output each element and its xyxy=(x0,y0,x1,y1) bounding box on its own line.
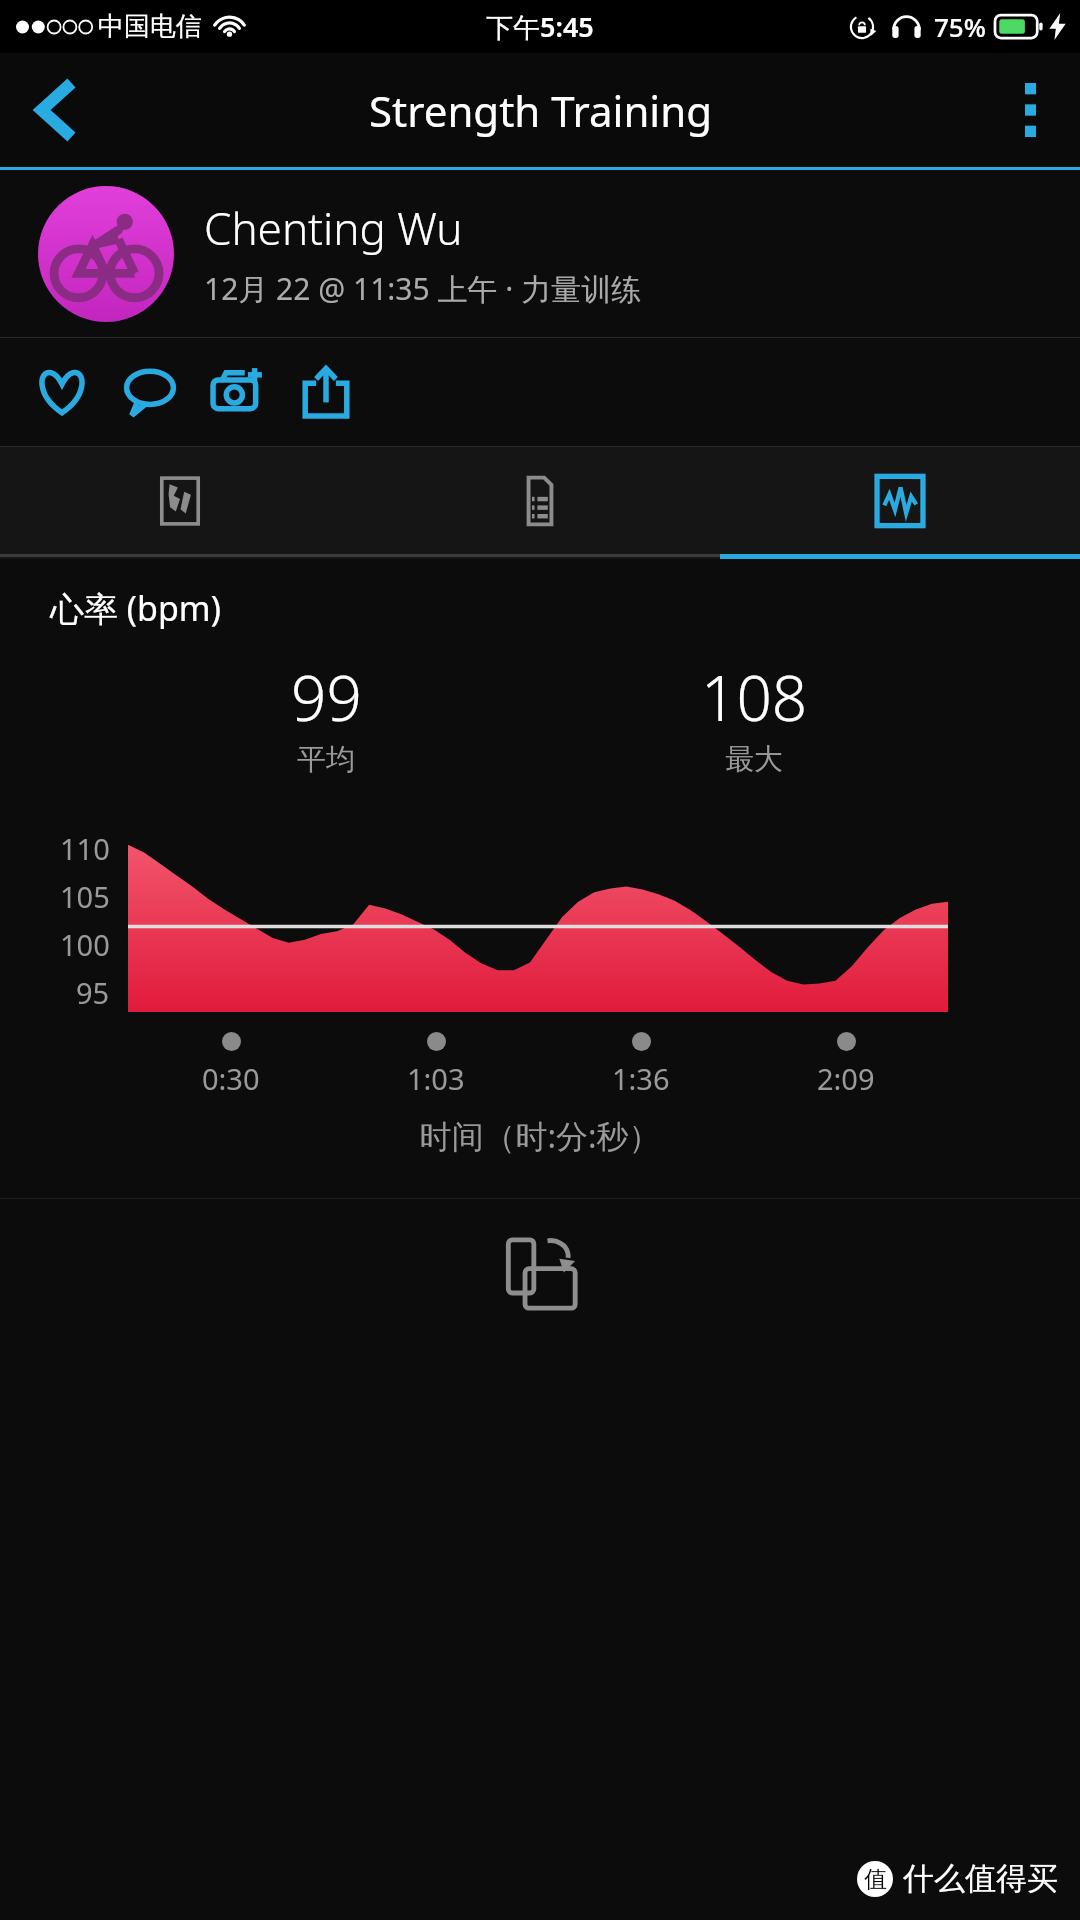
staticText: 0:30 xyxy=(202,1059,260,1098)
button[interactable]: Charts xyxy=(720,447,1080,554)
button[interactable]: Chenting Wu xyxy=(0,170,1080,337)
staticText: 108 xyxy=(701,655,808,739)
button[interactable]: Comment xyxy=(106,348,194,436)
staticText: 最大 xyxy=(725,741,783,778)
staticText: 平均 xyxy=(297,741,355,778)
button[interactable]: Like xyxy=(18,348,106,436)
staticText: 心率 (bpm) xyxy=(50,585,221,631)
staticText: 中国电信 xyxy=(98,10,202,43)
button[interactable]: Details xyxy=(360,447,720,554)
staticText: 95 xyxy=(76,973,110,1012)
button[interactable]: More options xyxy=(980,53,1080,167)
staticText: 下午5:45 xyxy=(486,8,594,45)
staticText: 什么值得买 xyxy=(903,1859,1058,1898)
staticText: 值 xyxy=(864,1865,887,1894)
staticText: 99 xyxy=(291,655,362,739)
button[interactable]: Map xyxy=(0,447,360,554)
staticText: 100 xyxy=(60,925,110,964)
staticText: 2:09 xyxy=(817,1059,875,1098)
staticText: 105 xyxy=(60,877,110,916)
staticText: Strength Training xyxy=(369,82,712,139)
button[interactable]: Share xyxy=(282,348,370,436)
button[interactable]: Rotate device xyxy=(484,1218,596,1330)
staticText: Chenting Wu xyxy=(204,198,463,258)
staticText: 12月 22 @ 11:35 上午 · 力量训练 xyxy=(204,268,642,309)
staticText: 时间（时:分:秒） xyxy=(0,1114,1080,1158)
button[interactable]: 值 xyxy=(857,1859,1058,1898)
button[interactable]: Back xyxy=(0,53,112,167)
staticText: 110 xyxy=(60,829,110,868)
staticText: 75% xyxy=(934,9,986,44)
button[interactable]: Add photo xyxy=(194,348,282,436)
staticText: 1:36 xyxy=(612,1059,670,1098)
staticText: 1:03 xyxy=(407,1059,465,1098)
